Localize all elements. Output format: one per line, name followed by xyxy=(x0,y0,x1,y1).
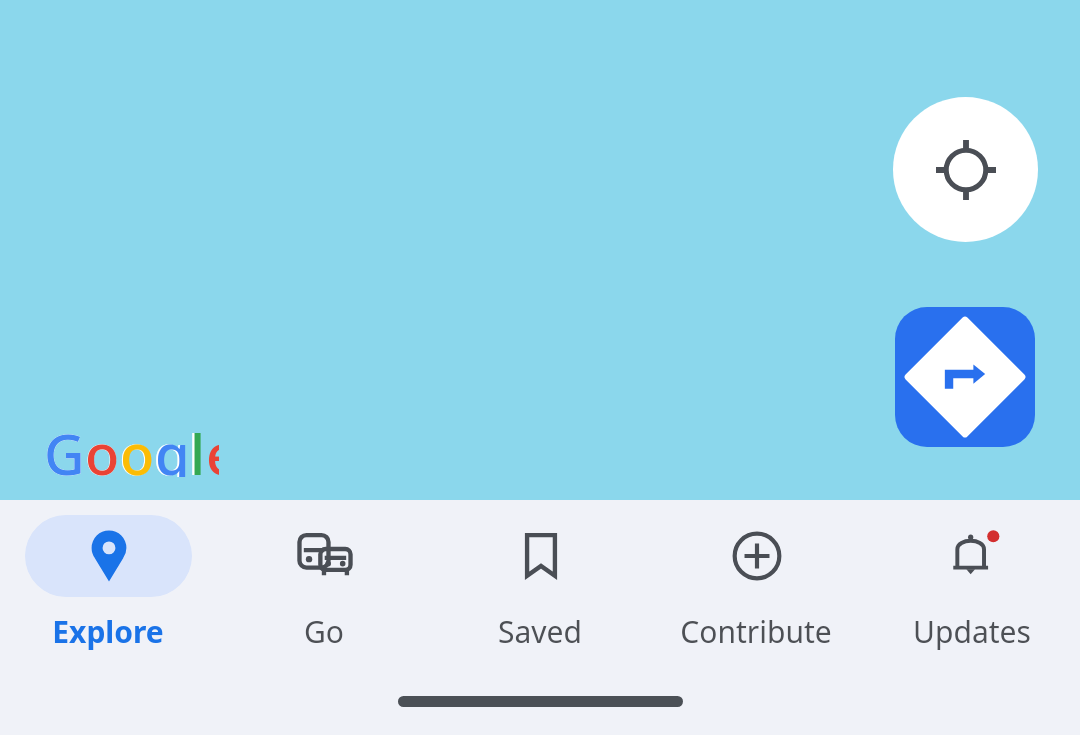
staticText: Saved xyxy=(498,611,582,652)
button[interactable]: My location xyxy=(893,97,1038,242)
staticText: e xyxy=(206,415,219,477)
staticText: G xyxy=(44,415,85,477)
button[interactable]: Contribute xyxy=(648,500,864,652)
staticText: Updates xyxy=(913,611,1031,652)
button[interactable]: Saved xyxy=(432,500,648,652)
staticText: l xyxy=(190,415,206,477)
staticText: g xyxy=(155,415,190,477)
staticText: Google xyxy=(44,415,219,477)
staticText: Contribute xyxy=(680,611,832,652)
staticText: Go xyxy=(304,611,344,652)
button[interactable]: Updates xyxy=(864,500,1080,652)
staticText: Explore xyxy=(52,611,164,652)
button[interactable]: Go xyxy=(216,500,432,652)
staticText: o xyxy=(85,415,120,477)
button[interactable]: Explore xyxy=(0,500,216,652)
staticText: o xyxy=(120,415,155,477)
button[interactable]: Directions xyxy=(895,307,1035,447)
